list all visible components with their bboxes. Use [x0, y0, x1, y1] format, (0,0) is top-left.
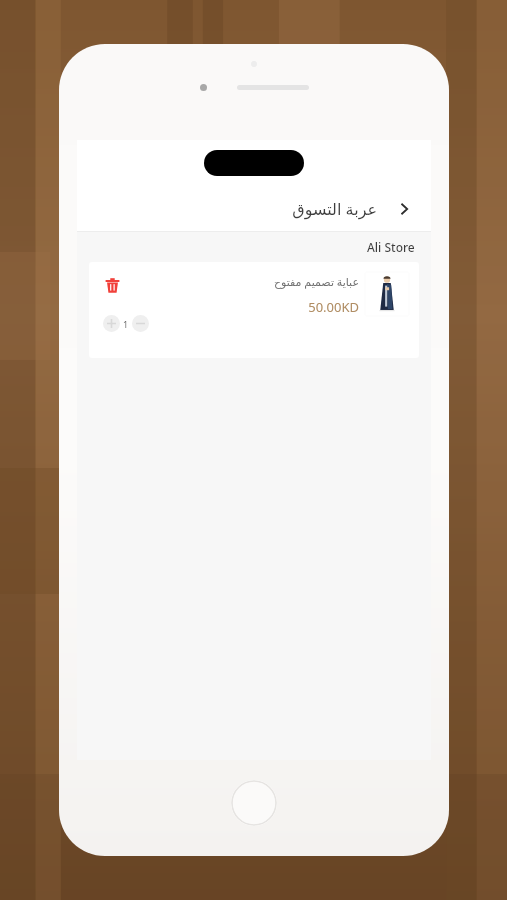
staticText: Ali Store [367, 239, 415, 255]
button[interactable]: Back [391, 196, 417, 222]
staticText: عباية تصميم مفتوح [273, 274, 359, 289]
button[interactable]: Delete item [101, 274, 123, 296]
staticText: 50.00KD [308, 298, 359, 316]
button[interactable]: عباية تصميم مفتوح [89, 262, 419, 358]
button[interactable]: Increase quantity [103, 315, 120, 332]
button[interactable]: Decrease quantity [132, 315, 149, 332]
staticText: عربة التسوق [292, 198, 377, 220]
staticText: 1 [123, 318, 129, 330]
